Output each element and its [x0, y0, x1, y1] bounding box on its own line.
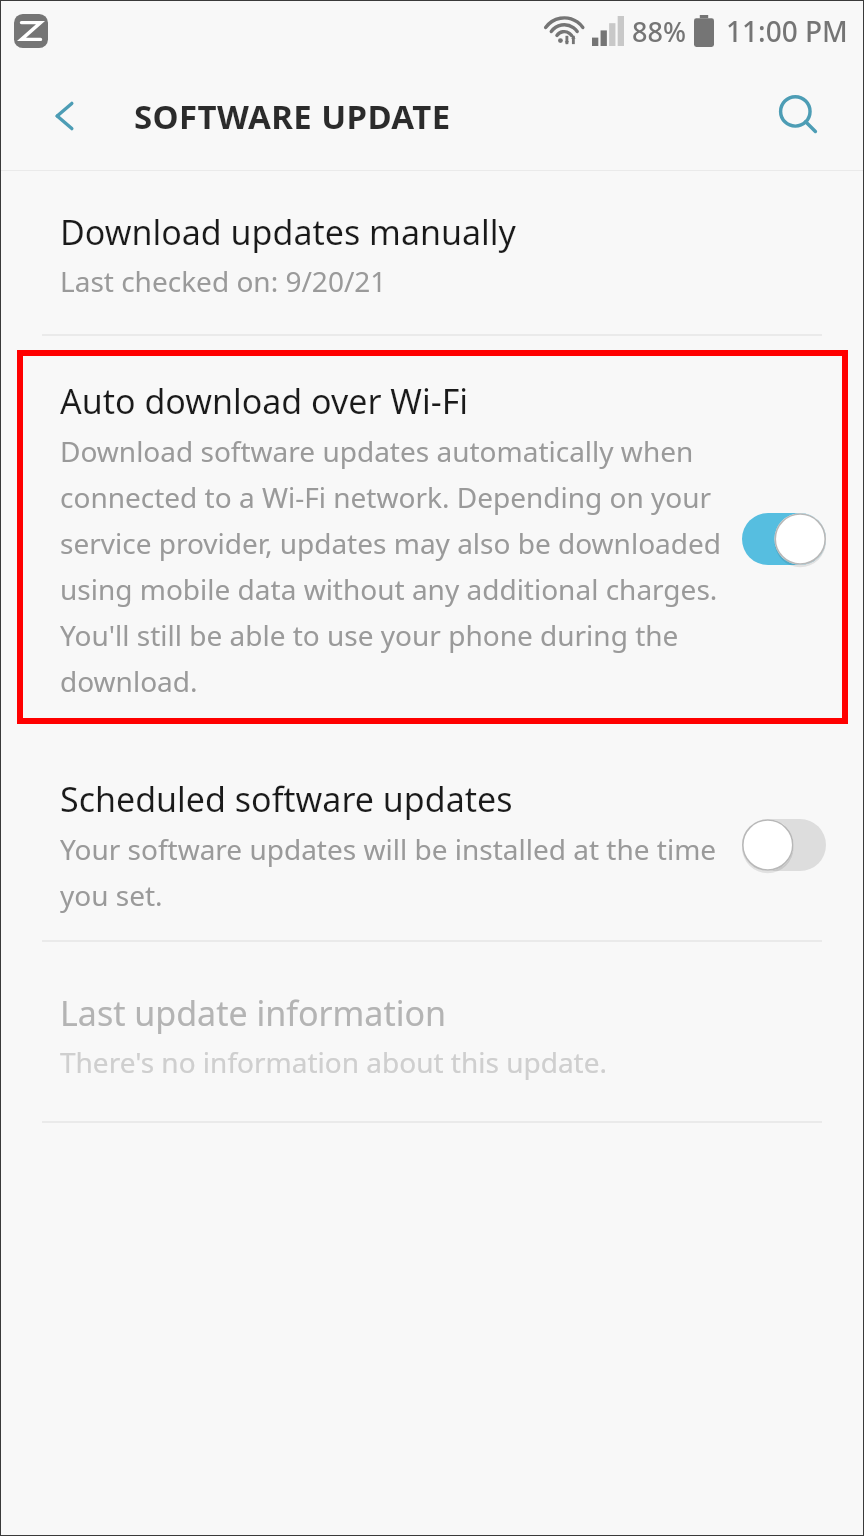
staticText: Last update information: [60, 990, 447, 1036]
button[interactable]: Search: [766, 83, 832, 149]
staticText: Last checked on: 9/20/21: [60, 262, 387, 300]
staticText: 11:00 PM: [726, 12, 848, 50]
staticText: Scheduled software updates: [60, 776, 513, 822]
button[interactable]: Toggle on: [742, 511, 826, 567]
button[interactable]: Auto download over Wi-Fi: [17, 350, 848, 724]
staticText: SOFTWARE UPDATE: [134, 94, 451, 139]
button[interactable]: Back: [34, 85, 96, 147]
staticText: Auto download over Wi-Fi: [60, 378, 469, 424]
button[interactable]: Last update information: [0, 942, 864, 1121]
staticText: 88%: [632, 13, 686, 50]
button[interactable]: Scheduled software updates: [0, 762, 864, 940]
staticText: Download updates manually: [60, 209, 516, 255]
button[interactable]: Download updates manually: [0, 171, 864, 334]
button[interactable]: Toggle off: [742, 817, 826, 873]
staticText: Your software updates will be installed …: [60, 830, 734, 914]
staticText: Download software updates automatically …: [60, 432, 734, 700]
staticText: There's no information about this update…: [60, 1043, 608, 1081]
